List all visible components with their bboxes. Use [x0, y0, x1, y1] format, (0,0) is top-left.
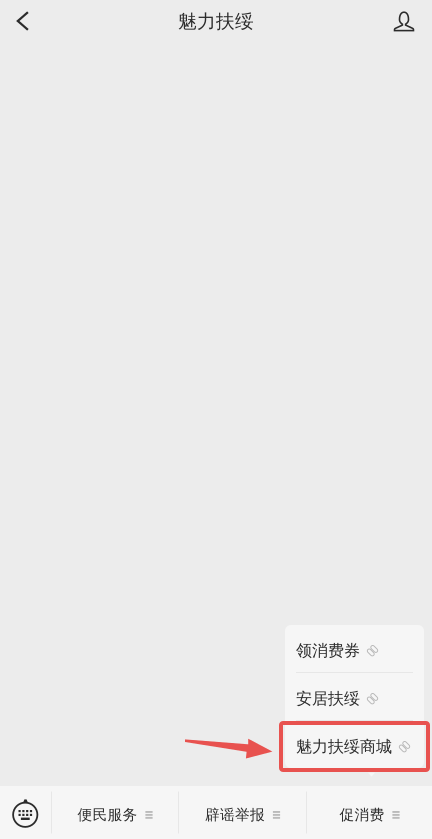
staticText: 安居扶绥: [296, 689, 360, 709]
button[interactable]: Keyboard: [0, 786, 51, 839]
button[interactable]: 便民服务: [52, 786, 178, 839]
staticText: 便民服务: [77, 806, 137, 824]
button[interactable]: 领消费券: [285, 625, 424, 672]
staticText: 魅力扶绥商城: [296, 737, 392, 757]
staticText: 促消费: [339, 806, 384, 824]
staticText: 辟谣举报: [205, 806, 265, 824]
staticText: 领消费券: [296, 641, 360, 661]
button[interactable]: 魅力扶绥商城: [285, 721, 424, 768]
button[interactable]: 安居扶绥: [285, 673, 424, 720]
button[interactable]: Profile: [382, 0, 426, 43]
button[interactable]: 辟谣举报: [179, 786, 306, 839]
button[interactable]: 促消费: [307, 786, 432, 839]
button[interactable]: Back: [0, 0, 44, 43]
staticText: 魅力扶绥: [178, 10, 254, 33]
